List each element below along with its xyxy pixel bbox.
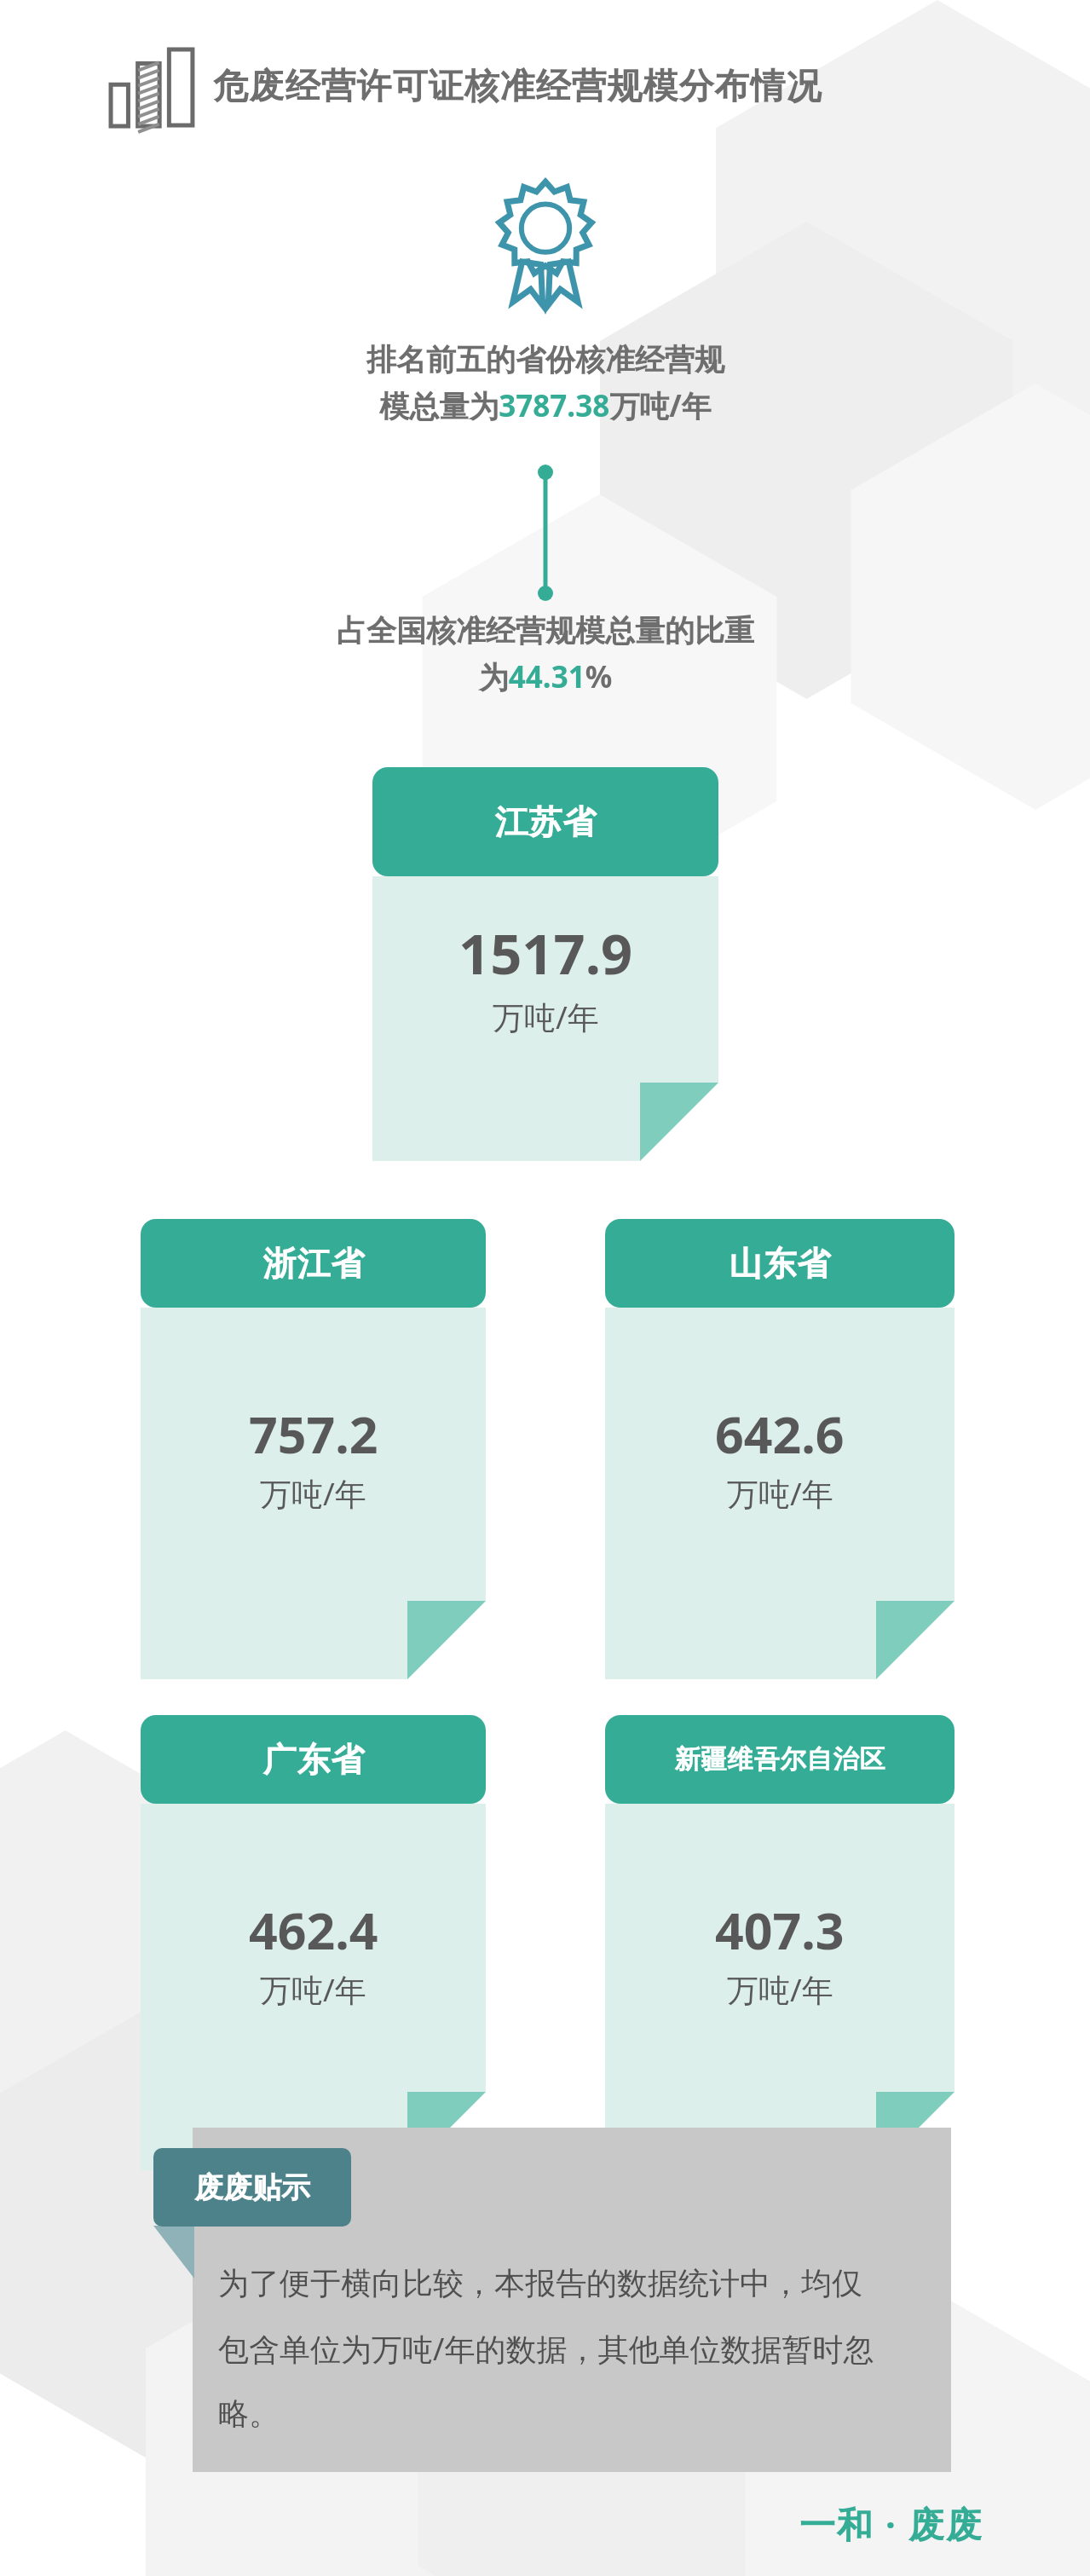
staticText: 新疆维吾尔自治区 <box>674 1743 885 1776</box>
staticText: 407.3 <box>715 1896 845 1964</box>
staticText: 浙江省 <box>262 1243 365 1285</box>
button[interactable]: 废废贴示 <box>153 2148 351 2227</box>
button[interactable]: 浙江省 <box>141 1219 486 1679</box>
staticText: 危废经营许可证核准经营规模分布情况 <box>213 65 822 109</box>
staticText: 江苏省 <box>494 801 597 843</box>
staticText: 万吨/年 <box>493 995 599 1038</box>
staticText: 为了便于横向比较，本报告的数据统计中，均仅包含单位为万吨/年的数据，其他单位数据… <box>218 2264 891 2434</box>
button[interactable]: 山东省 <box>605 1219 954 1679</box>
staticText: 山东省 <box>729 1243 831 1285</box>
staticText: 462.4 <box>249 1896 378 1964</box>
staticText: 757.2 <box>249 1400 378 1468</box>
staticText: 万吨/年 <box>260 1967 366 2011</box>
button[interactable]: 新疆维吾尔自治区 <box>605 1715 954 2170</box>
other: Bar chart <box>109 48 196 126</box>
staticText: 642.6 <box>715 1400 845 1468</box>
button[interactable]: 一和 · 废废 <box>799 2499 983 2548</box>
staticText: 废废贴示 <box>194 2169 310 2206</box>
staticText: 一和 · 废废 <box>799 2499 983 2548</box>
staticText: 万吨/年 <box>727 1471 833 1515</box>
button[interactable]: 江苏省 <box>372 767 718 1161</box>
staticText: 万吨/年 <box>727 1967 833 2011</box>
staticText: 万吨/年 <box>260 1471 366 1515</box>
button[interactable]: 广东省 <box>141 1715 486 2170</box>
staticText: 占全国核准经营规模总量的比重 为44.31% <box>273 612 818 697</box>
other: Award badge <box>493 186 598 307</box>
staticText: 1517.9 <box>458 915 633 991</box>
staticText: 广东省 <box>262 1739 365 1781</box>
staticText: 排名前五的省份核准经营规 模总量为3787.38万吨/年 <box>298 341 793 426</box>
